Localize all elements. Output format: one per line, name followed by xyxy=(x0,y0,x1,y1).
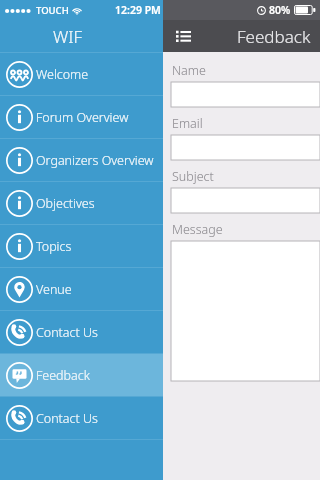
button[interactable] xyxy=(171,241,320,381)
staticText: Message xyxy=(172,221,223,238)
staticText: Feedback xyxy=(237,25,311,48)
button[interactable]: Contact Us xyxy=(0,397,163,439)
button[interactable]: Organizers Overview xyxy=(0,139,163,181)
button[interactable] xyxy=(171,135,320,160)
staticText: Forum Overview xyxy=(36,109,129,126)
staticText: WIF xyxy=(53,25,83,48)
button[interactable]: Contact Us xyxy=(0,311,163,353)
staticText: Welcome xyxy=(36,66,89,83)
staticText: Objectives xyxy=(36,195,95,212)
button[interactable]: Welcome xyxy=(0,53,163,95)
staticText: Contact Us xyxy=(36,324,98,341)
staticText: Venue xyxy=(36,281,72,298)
button[interactable]: Venue xyxy=(0,268,163,310)
button[interactable]: WIF xyxy=(0,20,163,52)
staticText: TOUCH xyxy=(36,4,69,17)
staticText: Feedback xyxy=(36,367,90,384)
staticText: Topics xyxy=(36,238,72,255)
staticText: Contact Us xyxy=(36,410,98,427)
button[interactable]: Forum Overview xyxy=(0,96,163,138)
staticText: Name xyxy=(172,62,206,79)
button[interactable]: Menu xyxy=(169,22,197,50)
staticText: Subject xyxy=(172,168,214,185)
button[interactable] xyxy=(171,188,320,213)
button[interactable] xyxy=(171,82,320,107)
staticText: 80% xyxy=(269,3,291,17)
staticText: Email xyxy=(172,115,203,132)
button[interactable]: Feedback xyxy=(0,354,163,396)
button[interactable]: Objectives xyxy=(0,182,163,224)
staticText: 12:29 PM xyxy=(115,3,161,17)
staticText: Organizers Overview xyxy=(36,152,154,169)
button[interactable]: Topics xyxy=(0,225,163,267)
